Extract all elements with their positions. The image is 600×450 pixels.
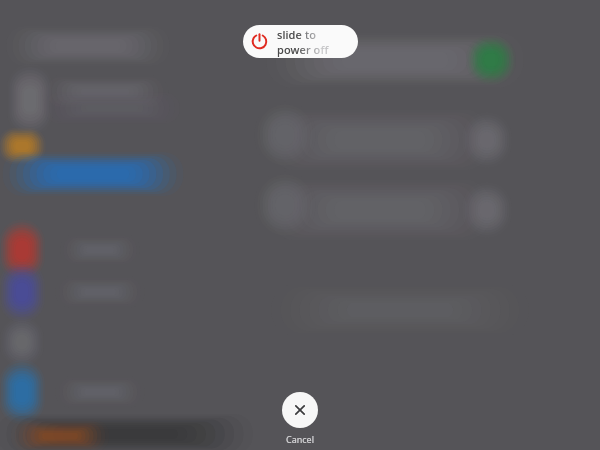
staticText: Cancel: [272, 433, 328, 445]
other: Power off: [251, 33, 268, 50]
button[interactable]: Power off: [243, 25, 358, 58]
button[interactable]: Cancel: [272, 392, 328, 445]
other: Cancel: [293, 403, 307, 417]
staticText: slide to power off: [277, 27, 348, 57]
